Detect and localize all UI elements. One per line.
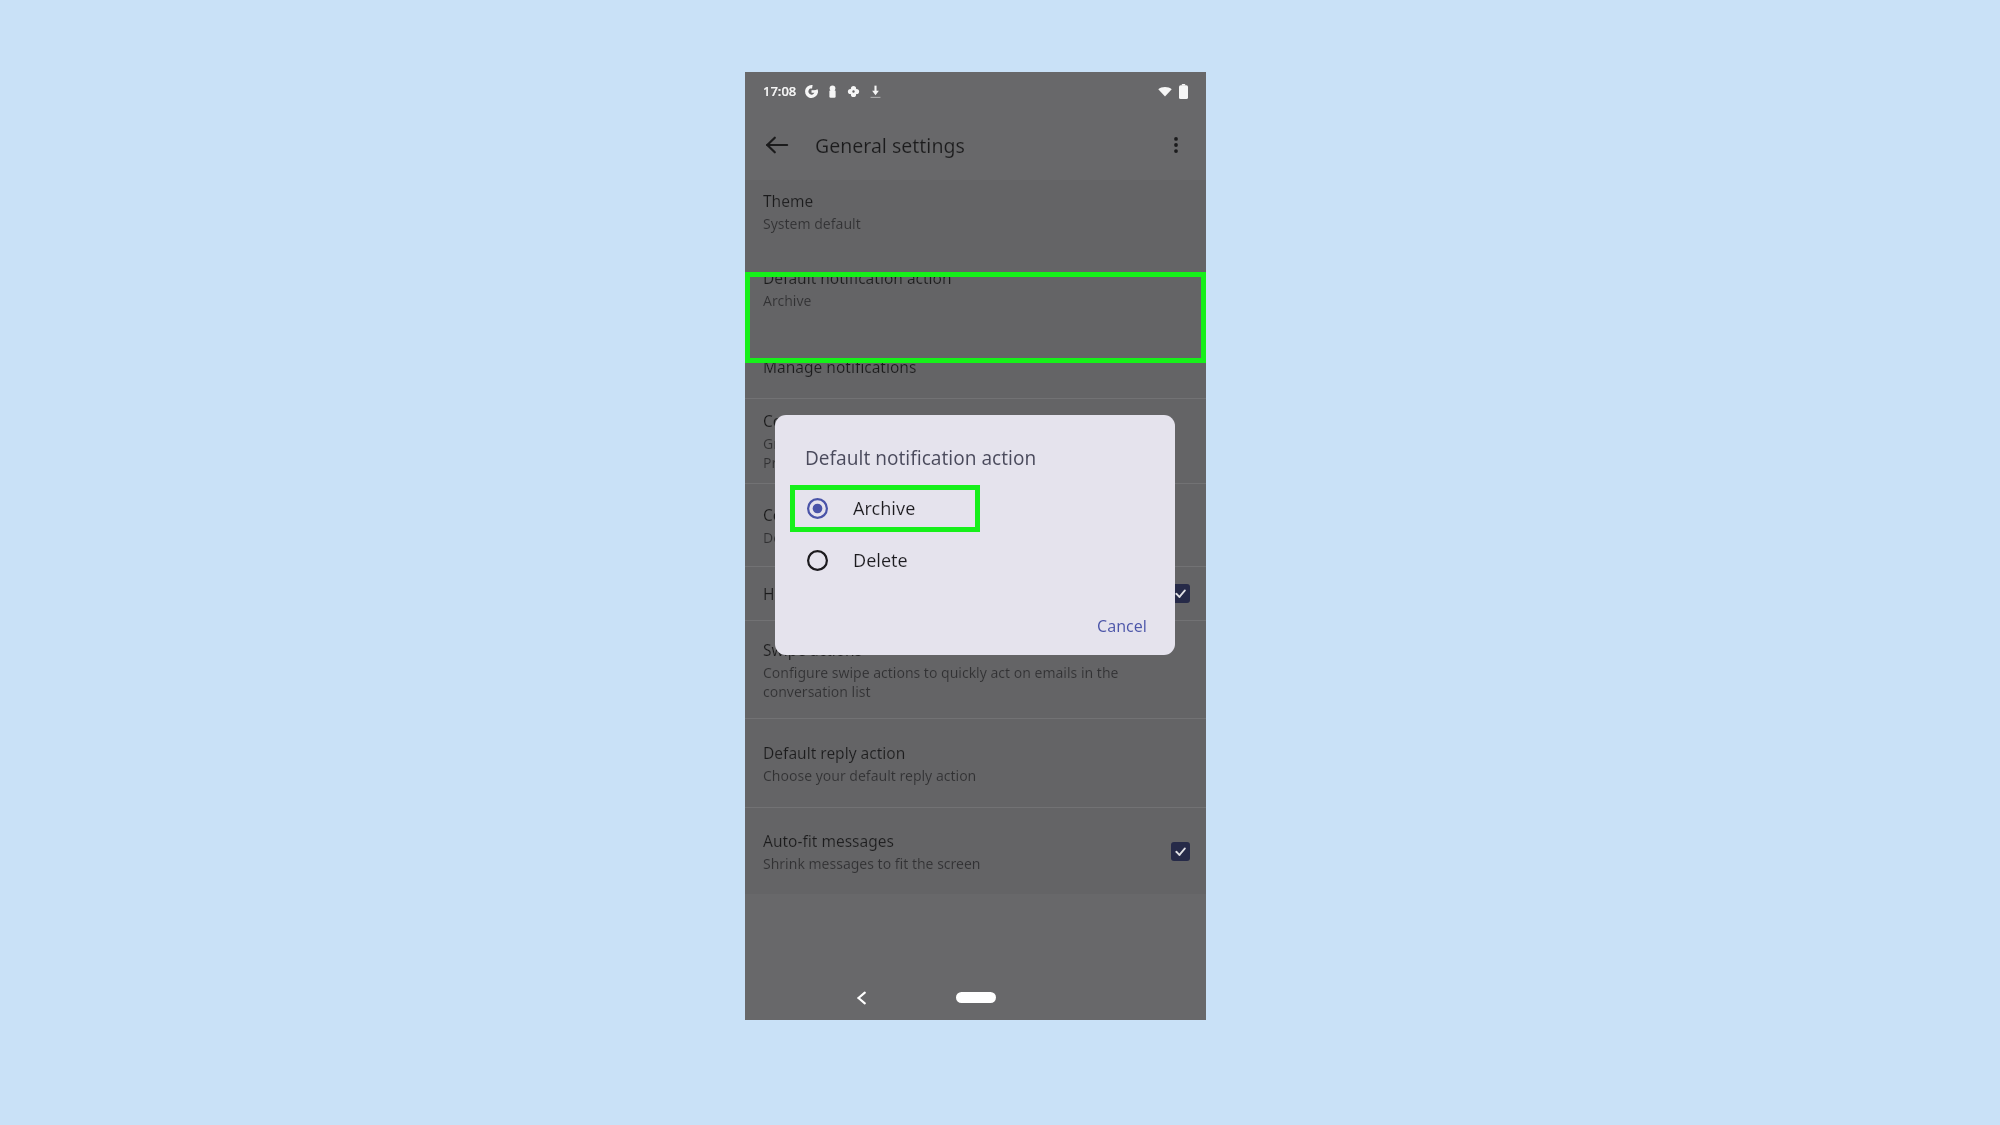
staticText: Default notification action xyxy=(805,445,1037,471)
staticText: 17:08 xyxy=(763,82,797,100)
staticText: Auto-fit messages xyxy=(763,830,894,851)
button[interactable]: Manage notifications xyxy=(745,334,1206,398)
staticText: Choose your default reply action xyxy=(763,766,977,785)
staticText: Shrink messages to fit the screen xyxy=(763,854,981,873)
staticText: Default notification action xyxy=(763,267,952,288)
button[interactable]: Cancel xyxy=(1087,609,1157,643)
button[interactable] xyxy=(745,272,1206,363)
button[interactable]: Auto-fit messages xyxy=(745,808,1206,894)
staticText: Default xyxy=(763,528,812,547)
button[interactable]: Archive xyxy=(790,485,980,532)
button[interactable]: Conversation list density xyxy=(745,484,1206,566)
staticText: Cancel xyxy=(1097,615,1147,637)
button[interactable]: Delete xyxy=(790,537,980,584)
staticText: System default xyxy=(763,214,861,233)
staticText: Group emails into conversations Preview … xyxy=(763,434,980,472)
staticText: Archive xyxy=(853,496,916,521)
staticText: Conversation list density xyxy=(763,504,942,525)
staticText: Hide bottom navigation on scroll xyxy=(763,583,1002,604)
staticText: General settings xyxy=(815,132,965,159)
button[interactable]: Back xyxy=(845,981,879,1015)
button[interactable] xyxy=(790,485,980,532)
button[interactable]: Hide bottom navigation on scroll xyxy=(745,567,1206,620)
button[interactable]: More options xyxy=(1154,123,1198,167)
staticText: Swipe actions xyxy=(763,639,863,660)
staticText: Delete xyxy=(853,548,908,573)
button[interactable]: Default reply action xyxy=(745,719,1206,807)
button[interactable]: Home xyxy=(956,992,996,1003)
button[interactable]: Conversation view xyxy=(745,399,1206,483)
button[interactable]: Default notification action xyxy=(745,243,1206,334)
button[interactable]: Theme xyxy=(745,180,1206,243)
staticText: Default reply action xyxy=(763,742,906,763)
button[interactable]: Back xyxy=(755,123,799,167)
staticText: Manage notifications xyxy=(763,356,917,377)
staticText: Archive xyxy=(763,291,812,310)
staticText: Configure swipe actions to quickly act o… xyxy=(763,663,1119,701)
staticText: Theme xyxy=(763,190,814,211)
button[interactable]: Swipe actions xyxy=(745,621,1206,718)
staticText: Conversation view xyxy=(763,410,896,431)
